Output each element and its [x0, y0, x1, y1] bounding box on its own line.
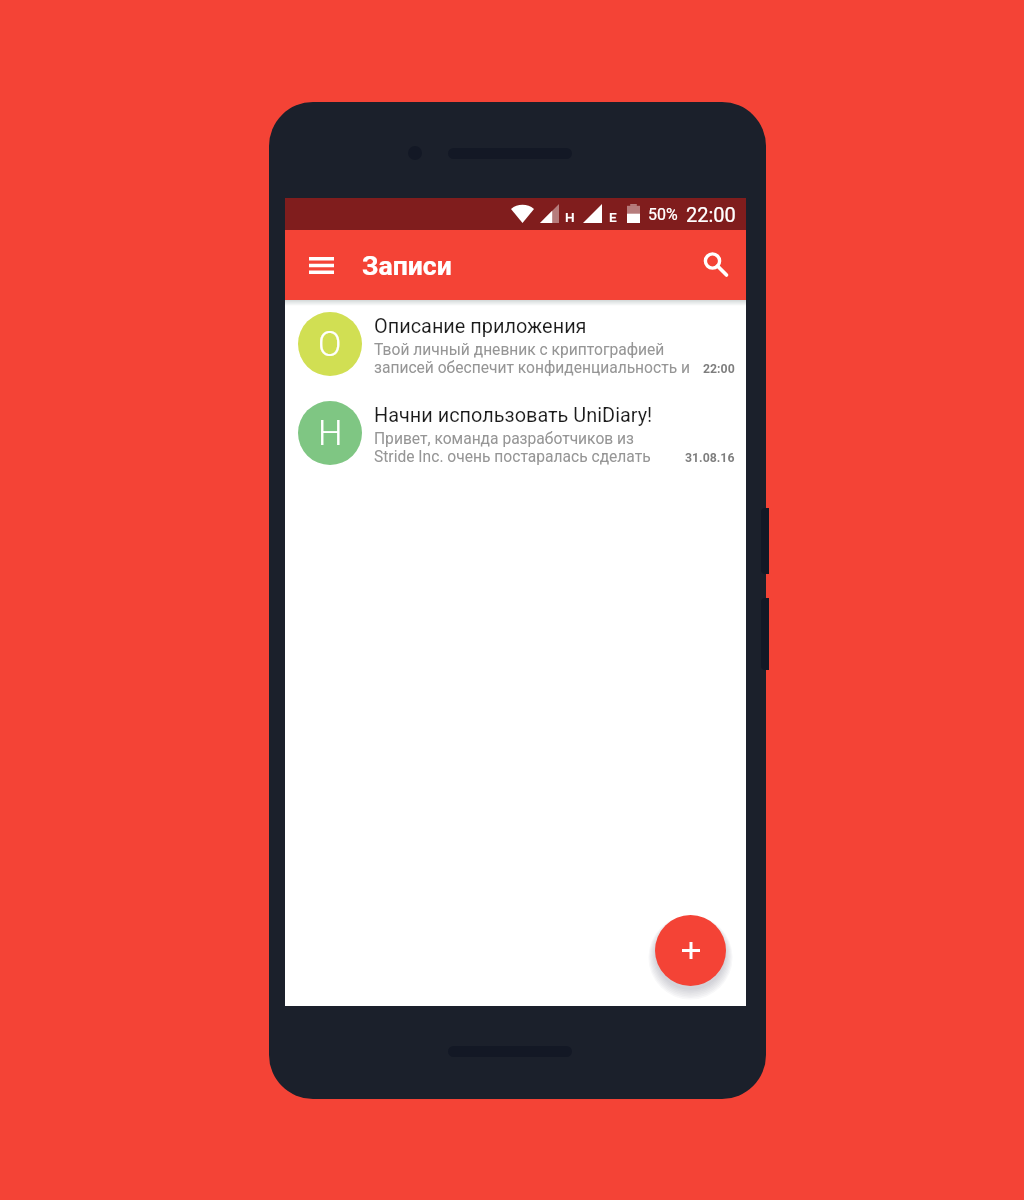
- staticText: Твой личный дневник с криптографией: [374, 341, 766, 359]
- staticText: 22:00: [703, 362, 735, 376]
- staticText: Описание приложения: [374, 315, 766, 338]
- staticText: записей обеспечит конфиденциальность и: [374, 359, 696, 377]
- staticText: 50%: [648, 205, 678, 224]
- staticText: H: [565, 209, 575, 225]
- staticText: Записи: [362, 250, 452, 281]
- button[interactable]: Open navigation menu: [297, 241, 345, 289]
- staticText: Начни использовать UniDiary!: [374, 404, 766, 427]
- button[interactable]: Search: [691, 243, 739, 291]
- staticText: Привет, команда разработчиков из: [374, 430, 766, 448]
- button[interactable]: Add new entry: [655, 915, 726, 986]
- staticText: H: [318, 413, 343, 453]
- staticText: E: [609, 209, 617, 225]
- staticText: 22:00: [686, 203, 736, 226]
- button[interactable]: O: [285, 312, 746, 382]
- staticText: O: [318, 324, 342, 364]
- button[interactable]: H: [285, 401, 746, 471]
- staticText: Stride Inc. очень постаралась сделать: [374, 448, 696, 466]
- staticText: 31.08.16: [685, 451, 735, 465]
